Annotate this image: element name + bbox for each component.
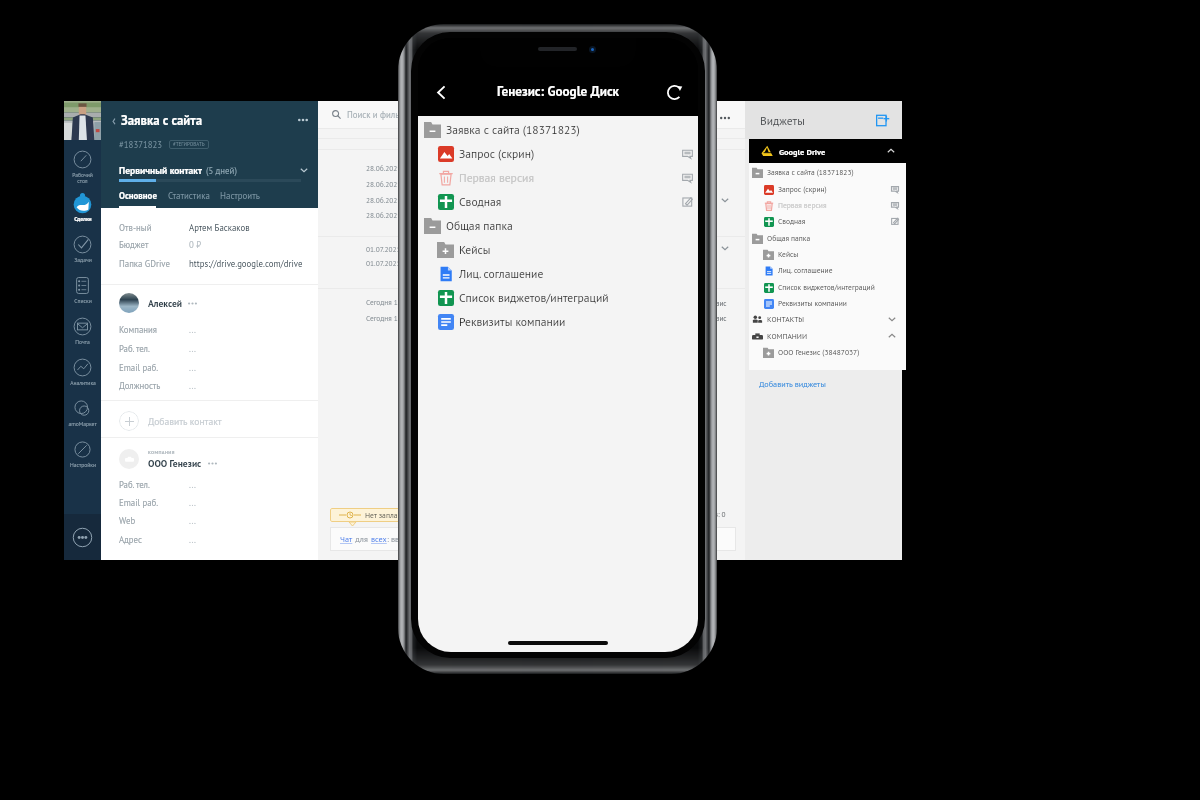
button[interactable]: Почта [64, 310, 101, 351]
staticText: (5 дней) [206, 165, 237, 176]
staticText: ... [189, 324, 196, 335]
button[interactable]: Сводная [436, 189, 693, 213]
staticText: Алексей [148, 297, 182, 309]
staticText: Настройки [70, 461, 96, 468]
staticText: Заявка с сайта [121, 112, 202, 129]
staticText: Папка GDrive [119, 258, 189, 269]
staticText: Общая папка [446, 218, 513, 233]
button[interactable]: Рабочий стол [64, 146, 101, 187]
staticText: ООО Генезис [686, 299, 727, 308]
staticText: Добавить виджеты [759, 379, 826, 390]
staticText: Адрес [119, 534, 189, 545]
button[interactable]: Сводная [763, 213, 899, 229]
button[interactable]: Лиц. соглашение [763, 262, 899, 278]
button[interactable]: Добавить виджет [874, 112, 890, 128]
staticText: ... [189, 343, 196, 354]
staticText: Бюджет [119, 239, 189, 250]
staticText: 28.06.2021 12:04 [366, 195, 422, 205]
staticText: 0 ₽ [189, 239, 201, 250]
button[interactable]: amoМаркет [64, 392, 101, 433]
staticText: Реквизиты компании [459, 314, 566, 329]
button[interactable]: Общая папка [752, 230, 899, 246]
staticText: ... [189, 515, 196, 526]
staticText: Общая папка [767, 233, 811, 243]
staticText: ООО Генезис [148, 457, 202, 469]
staticText: Должность [119, 380, 189, 391]
button[interactable]: Сделки [64, 187, 101, 228]
button[interactable]: ООО Генезис (38487037) [763, 344, 899, 360]
staticText: Поиск и фильтры [347, 109, 414, 120]
staticText: ... [189, 534, 196, 545]
staticText: Запрос (скрин) [778, 184, 827, 194]
staticText: #18371823 [119, 139, 163, 150]
staticText: Лиц. соглашение [778, 265, 833, 275]
button[interactable]: Заявка с сайта (18371823) [423, 117, 693, 141]
button[interactable]: Кейсы [763, 246, 899, 262]
staticText: : введите текст [387, 534, 440, 545]
button[interactable]: Настройки [64, 433, 101, 474]
button[interactable]: Добавить виджеты [759, 374, 902, 394]
button[interactable]: Задачи [64, 228, 101, 269]
staticText: Раб. тел. [119, 479, 189, 490]
staticText: Нет запланированных задач [365, 510, 440, 520]
button[interactable]: Первая версия [763, 197, 899, 213]
staticText: Основное [119, 190, 157, 202]
staticText: Добавить контакт [148, 415, 222, 427]
staticText: Списки [74, 297, 92, 304]
staticText: Web [119, 515, 189, 526]
staticText: Заявка с сайта (18371823) [767, 167, 854, 177]
button[interactable]: Заявка с сайта (18371823) [752, 164, 899, 180]
staticText: 01.07.2021 11:31 [366, 244, 421, 254]
button[interactable]: Реквизиты компании [763, 295, 899, 311]
staticText: Отв-ный [119, 222, 189, 233]
button[interactable]: Запрос (скрин) [763, 181, 899, 197]
staticText: ООО Генезис (38487037) [778, 347, 860, 357]
button[interactable]: Запрос (скрин) [436, 141, 693, 165]
staticText: КОМПАНИИ [767, 331, 808, 341]
staticText: Реквизиты компании [778, 298, 847, 308]
staticText: 28.06.2021 12:05 [366, 210, 422, 220]
staticText: amoМаркет [68, 420, 97, 427]
staticText: 28.06.2021 12:04 [366, 179, 422, 189]
button[interactable]: Первая версия [436, 165, 693, 189]
button[interactable]: Google Drive [761, 139, 895, 163]
staticText: КОНТАКТЫ [767, 314, 805, 324]
button[interactable]: Лиц. соглашение [436, 261, 693, 285]
staticText: ... [189, 380, 196, 391]
button[interactable]: Обновить [659, 77, 689, 107]
button[interactable]: Списки [64, 269, 101, 310]
staticText: Email раб. [119, 362, 189, 373]
staticText: Запрос (скрин) [459, 146, 535, 161]
button[interactable]: Список виджетов/интеграций [436, 285, 693, 309]
staticText: Аналитика [70, 379, 96, 386]
button[interactable]: Аналитика [64, 351, 101, 392]
button[interactable]: Общая папка [423, 213, 693, 237]
staticText: ... [189, 497, 196, 508]
staticText: Чат [340, 534, 353, 545]
staticText: ‹ [112, 112, 116, 129]
staticText: Первая версия [459, 170, 534, 185]
staticText: КОМПАНИЯ [148, 449, 175, 455]
staticText: Email раб. [119, 497, 189, 508]
button[interactable]: Список виджетов/интеграций [763, 279, 899, 295]
staticText: Задачи [74, 256, 92, 263]
staticText: Настроить [220, 190, 260, 202]
staticText: Кейсы [778, 249, 799, 259]
staticText: Сводная [778, 216, 806, 226]
staticText: Заявка с сайта (18371823) [446, 122, 580, 137]
staticText: Статистика [168, 190, 210, 202]
button[interactable]: Кейсы [436, 237, 693, 261]
button[interactable]: КОМПАНИИ [752, 328, 896, 344]
staticText: ООО Генезис [686, 314, 727, 323]
staticText: всех [371, 534, 387, 545]
staticText: Сегодня 10:57 [366, 313, 412, 323]
staticText: Генезис: Google Диск [497, 83, 620, 100]
staticText: Список виджетов/интеграций [778, 282, 875, 292]
button[interactable]: Назад [426, 77, 456, 107]
staticText: Артем Баскаков [189, 222, 250, 233]
staticText: Ответов: 0 [692, 509, 726, 519]
button[interactable]: КОНТАКТЫ [752, 311, 896, 327]
staticText: https://drive.google.com/drive [189, 258, 303, 269]
button[interactable]: Добавить контакт [119, 411, 318, 431]
button[interactable]: Реквизиты компании [436, 309, 693, 333]
